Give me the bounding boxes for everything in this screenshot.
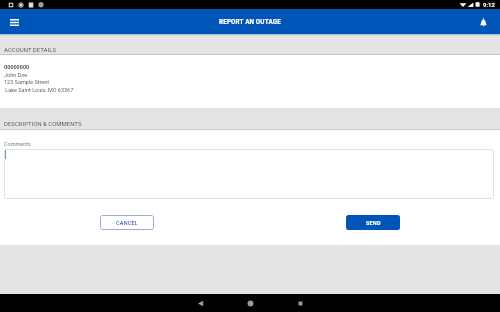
staticText: John Doe <box>4 72 28 78</box>
staticText: Comments <box>4 141 31 147</box>
staticText: CANCEL <box>116 220 139 226</box>
button[interactable]: Back <box>191 294 209 312</box>
button[interactable] <box>4 149 494 199</box>
staticText: ACCOUNT DETAILS <box>4 46 56 53</box>
staticText: DESCRIPTION & COMMENTS <box>4 120 82 127</box>
button[interactable]: SEND <box>346 215 400 230</box>
button[interactable]: CANCEL <box>100 215 154 230</box>
staticText: 00000000 <box>4 64 30 70</box>
button[interactable]: Open navigation menu <box>6 14 22 30</box>
button[interactable]: Notifications <box>475 14 491 30</box>
staticText: 9:12 <box>483 1 495 8</box>
staticText: SEND <box>366 220 381 226</box>
staticText: 123 Sample Street <box>4 79 49 85</box>
button[interactable]: Recent apps <box>291 294 309 312</box>
staticText: Lake Saint Louis, MO 63367 <box>4 87 74 93</box>
button[interactable]: Home <box>241 294 259 312</box>
staticText: REPORT AN OUTAGE <box>219 18 281 25</box>
